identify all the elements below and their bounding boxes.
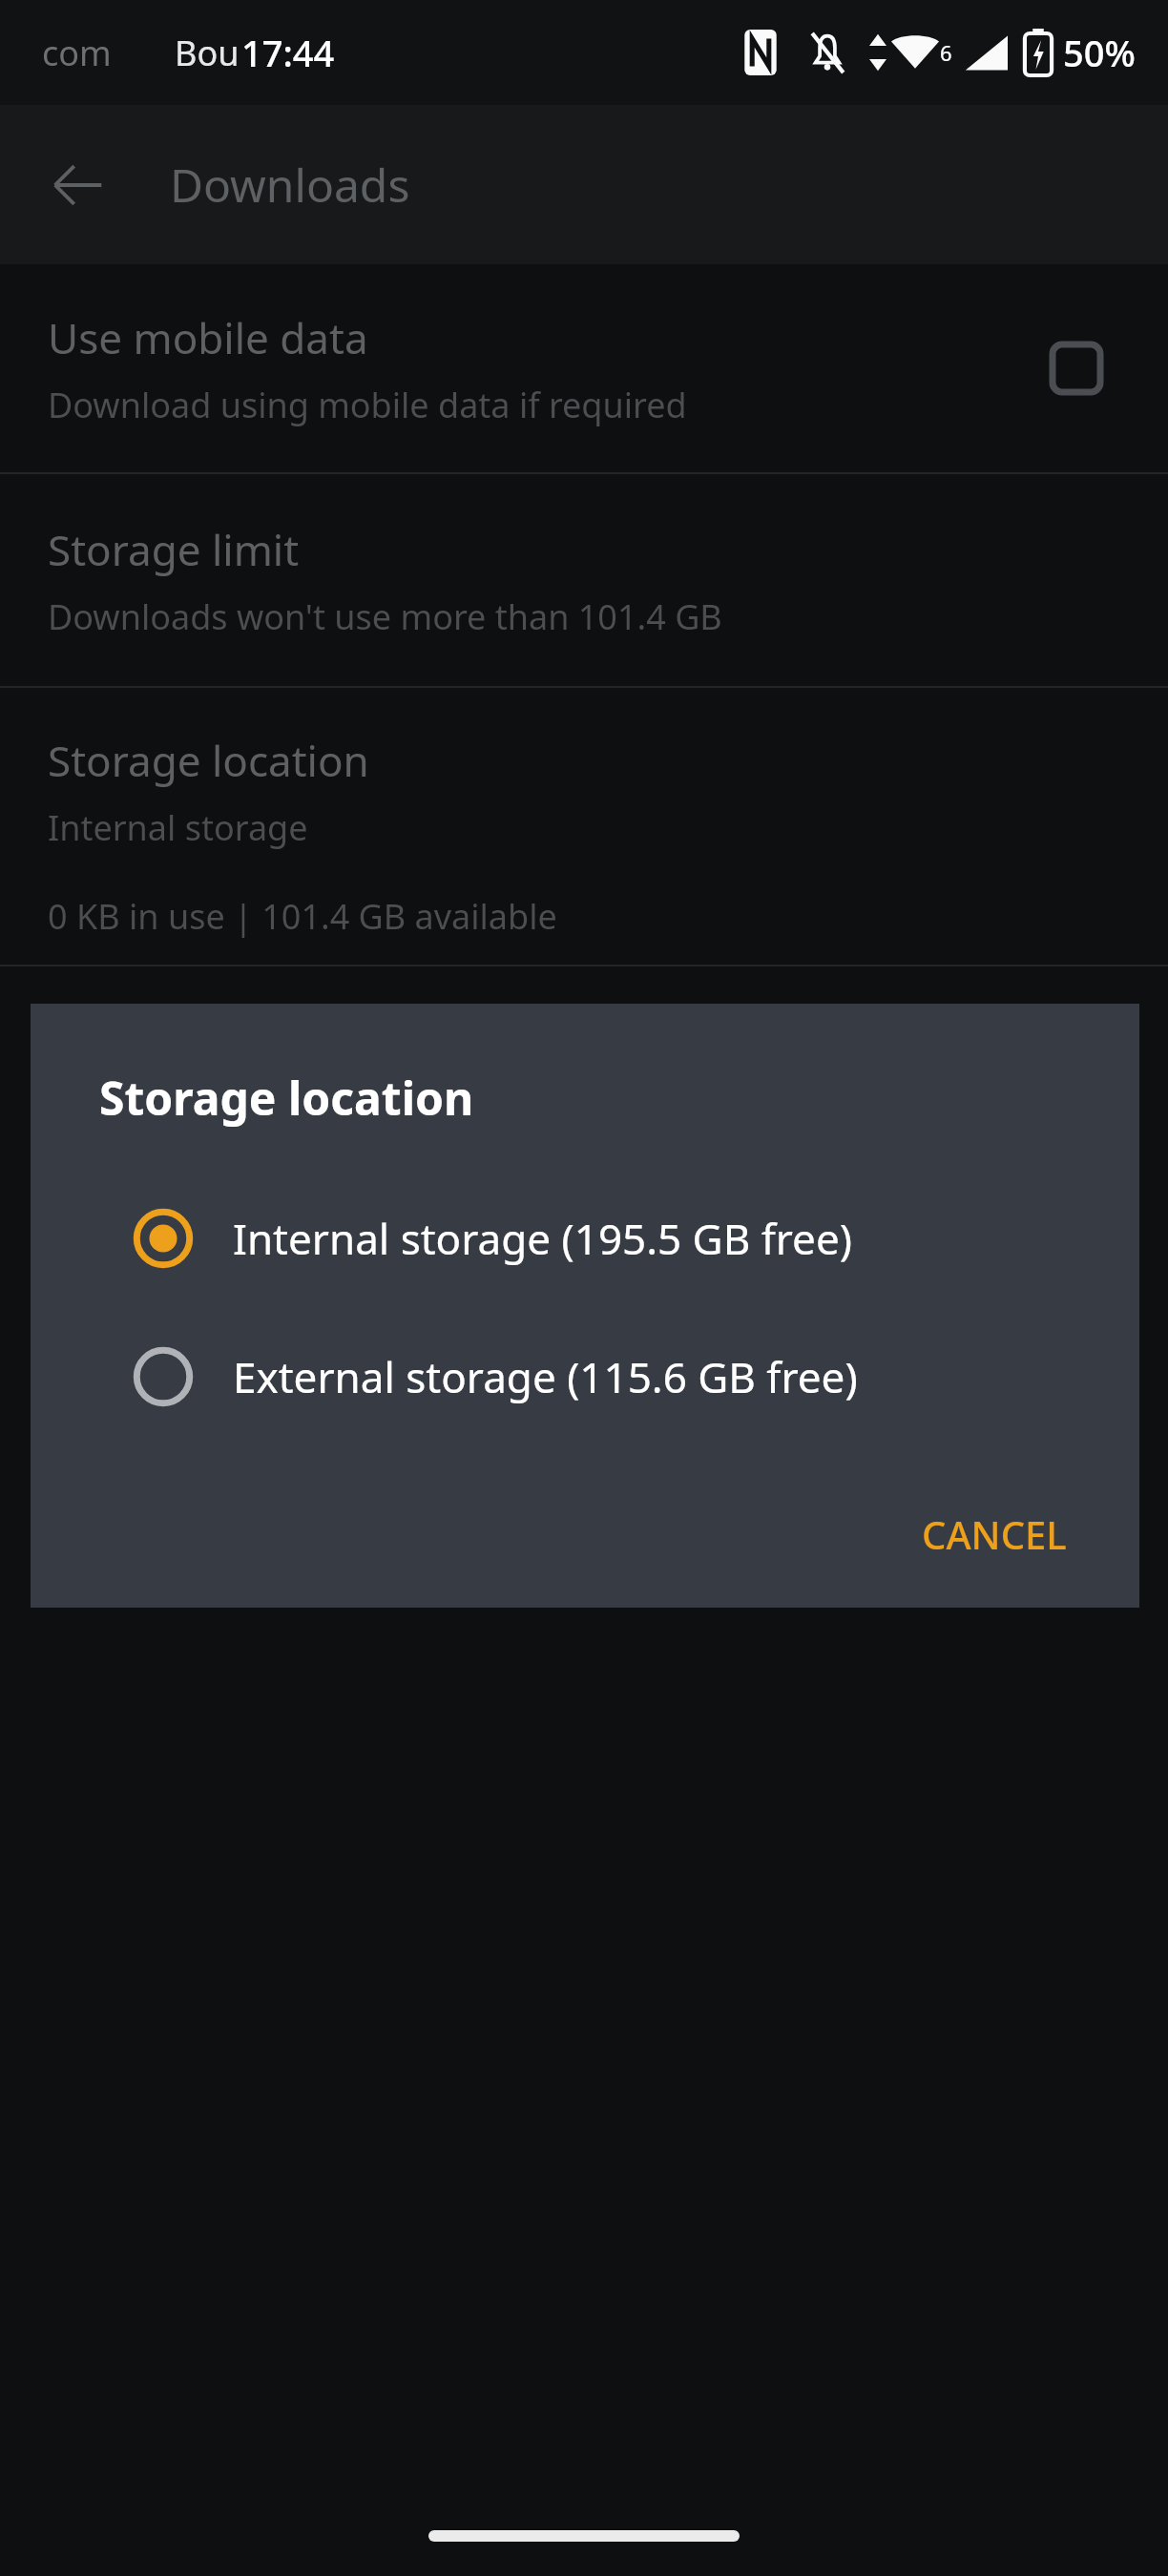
staticText: 6 bbox=[940, 38, 952, 67]
button[interactable]: Storage location bbox=[0, 688, 1168, 965]
staticText: com bbox=[42, 30, 112, 76]
button[interactable]: Use mobile data bbox=[0, 264, 1168, 472]
staticText: Downloads won't use more than 101.4 GB bbox=[48, 593, 722, 640]
staticText: Downloads bbox=[170, 154, 410, 216]
staticText: Use mobile data bbox=[48, 309, 368, 366]
staticText: Bou bbox=[175, 30, 240, 76]
staticText: Storage location bbox=[99, 1067, 474, 1129]
button[interactable]: Back bbox=[32, 139, 124, 231]
staticText: 0 KB in use | 101.4 GB available bbox=[48, 893, 557, 940]
staticText: Internal storage bbox=[48, 804, 308, 851]
button[interactable]: External storage (115.6 GB free) bbox=[31, 1307, 1139, 1445]
staticText: External storage (115.6 GB free) bbox=[233, 1348, 858, 1405]
staticText: Internal storage (195.5 GB free) bbox=[233, 1210, 852, 1267]
staticText: 50% bbox=[1063, 28, 1136, 77]
button[interactable]: Internal storage (195.5 GB free) bbox=[31, 1169, 1139, 1307]
staticText: CANCEL bbox=[922, 1508, 1067, 1560]
button[interactable]: Storage limit bbox=[0, 474, 1168, 686]
staticText: Storage location bbox=[48, 732, 369, 789]
staticText: 17:44 bbox=[241, 28, 335, 77]
staticText: Storage limit bbox=[48, 521, 300, 578]
button[interactable]: CANCEL bbox=[895, 1489, 1094, 1579]
staticText: Download using mobile data if required bbox=[48, 382, 687, 428]
